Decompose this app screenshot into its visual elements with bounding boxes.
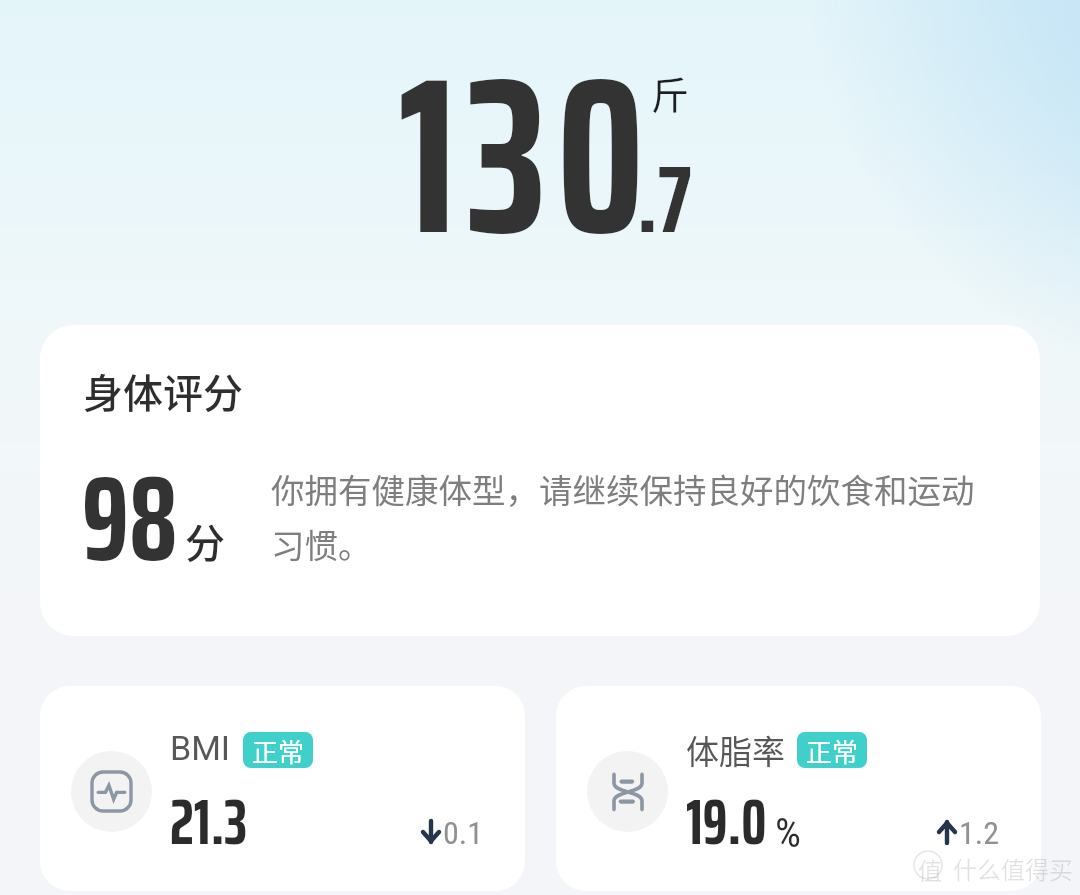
- button[interactable]: BMI: [40, 686, 525, 891]
- button[interactable]: 体脂率: [556, 686, 1041, 891]
- staticText: 什么值得买: [953, 851, 1073, 886]
- staticText: BMI: [170, 728, 231, 768]
- staticText: 0.1: [443, 814, 484, 852]
- staticText: 正常: [806, 732, 859, 768]
- staticText: 体脂率: [686, 726, 785, 774]
- staticText: 21.3: [170, 772, 248, 871]
- staticText: 正常: [252, 732, 305, 768]
- staticText: 值: [918, 852, 942, 887]
- staticText: 你拥有健康体型，请继续保持良好的饮食和运动习惯。: [271, 464, 987, 568]
- staticText: 130: [398, 0, 655, 328]
- staticText: 分: [185, 512, 225, 570]
- staticText: %: [775, 809, 801, 857]
- button[interactable]: 身体评分: [40, 325, 1040, 636]
- staticText: 1.2: [959, 814, 1000, 852]
- staticText: 98: [82, 424, 178, 613]
- staticText: .7: [637, 124, 692, 274]
- staticText: 19.0: [686, 772, 767, 871]
- staticText: 斤: [651, 65, 690, 120]
- staticText: 身体评分: [83, 362, 243, 420]
- button[interactable]: 当前体重 130.7 斤: [380, 60, 710, 240]
